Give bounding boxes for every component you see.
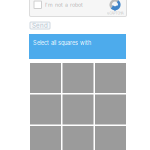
button[interactable]: Image tile (30, 94, 61, 124)
staticText: Select all squares with (33, 39, 91, 46)
button[interactable]: Image tile (62, 94, 93, 124)
button[interactable]: I'm not a robot (29, 0, 126, 16)
button[interactable]: Image tile (62, 63, 93, 93)
button[interactable]: Send (30, 22, 50, 29)
staticText: Send (32, 22, 48, 29)
button[interactable]: Image tile (62, 126, 93, 150)
staticText: reCAPTCHA (106, 11, 123, 15)
staticText: I'm not a robot (45, 1, 83, 8)
button[interactable]: Image tile (95, 94, 126, 124)
